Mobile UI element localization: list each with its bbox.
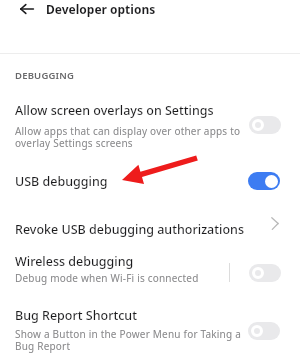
staticText: Show a Button in the Power Menu for Taki…	[15, 327, 241, 353]
button[interactable]	[249, 264, 281, 282]
button[interactable]: Revoke USB debugging authorizations	[0, 208, 300, 248]
staticText: Allow apps that can display over other a…	[15, 124, 241, 150]
staticText: Wireless debugging	[15, 253, 134, 270]
button[interactable]: USB debugging	[0, 160, 300, 202]
staticText: Debug mode when Wi-Fi is connected	[15, 271, 199, 285]
button[interactable]	[12, 0, 42, 18]
staticText: USB debugging	[15, 173, 108, 190]
button[interactable]: Wireless debugging	[0, 246, 300, 296]
button[interactable]: Bug Report Shortcut	[0, 298, 300, 358]
staticText: Allow screen overlays on Settings	[15, 102, 214, 119]
button[interactable]	[249, 116, 281, 134]
button[interactable]	[248, 172, 280, 190]
button[interactable]: Allow screen overlays on Settings	[0, 90, 300, 152]
staticText: DEBUGGING	[15, 69, 75, 82]
staticText: Developer options	[46, 1, 156, 17]
staticText: Revoke USB debugging authorizations	[15, 221, 244, 238]
staticText: Bug Report Shortcut	[15, 307, 137, 324]
button[interactable]	[248, 322, 280, 340]
